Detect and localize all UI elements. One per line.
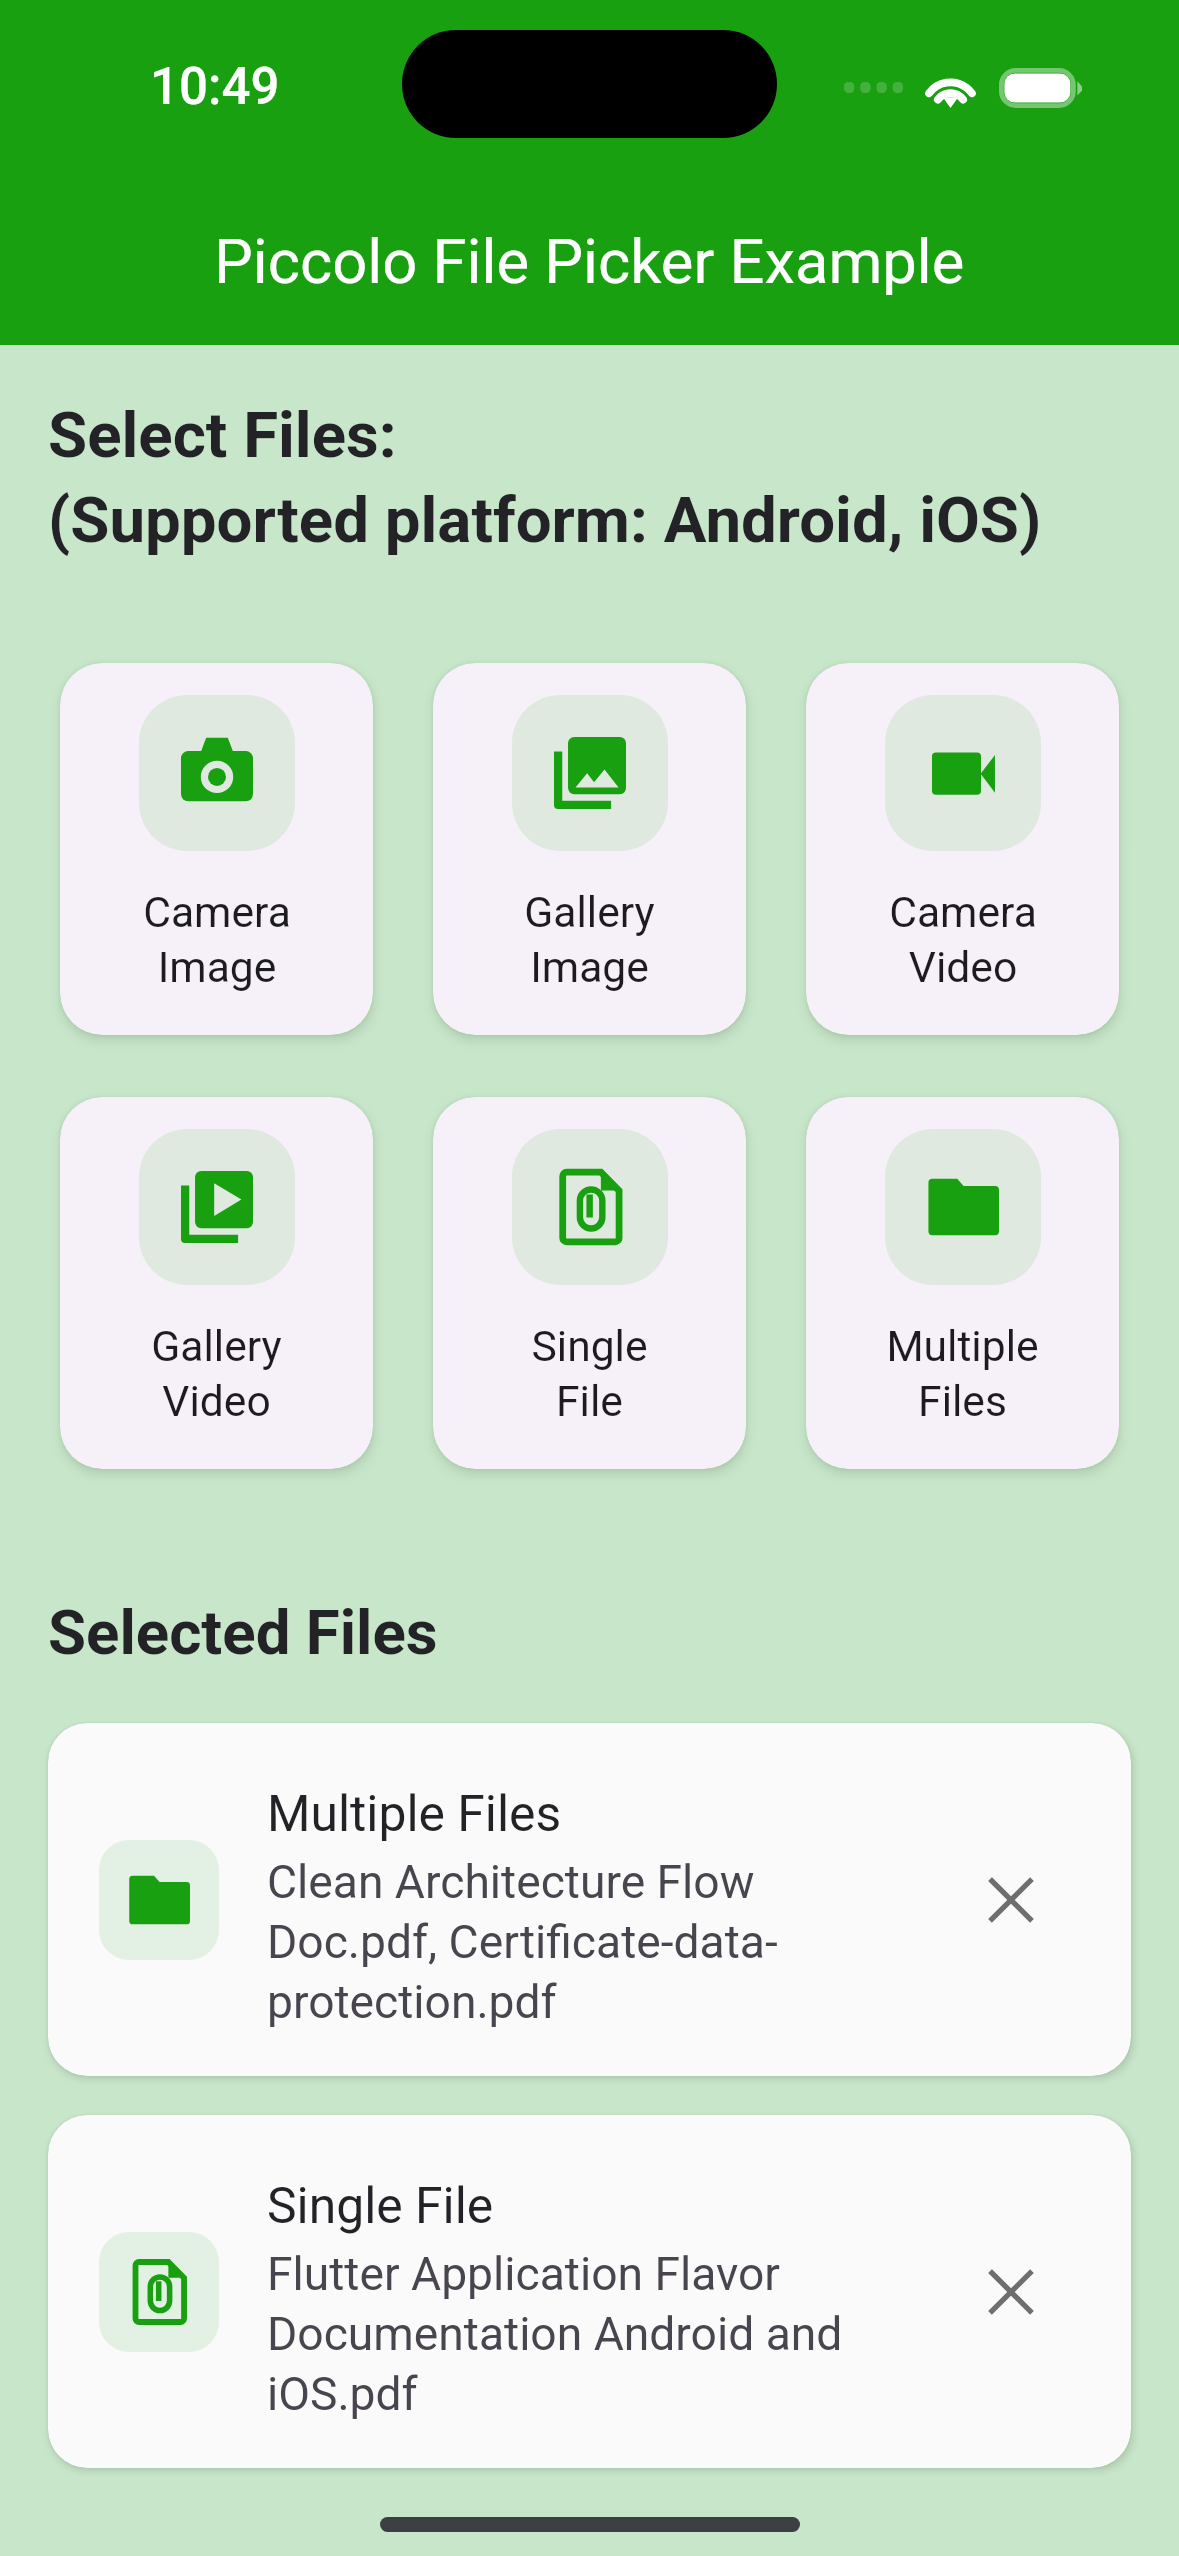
staticText: Single File — [531, 1321, 648, 1426]
button[interactable]: Gallery Image — [433, 663, 746, 1035]
staticText: Multiple Files — [886, 1321, 1039, 1426]
staticText: Camera Video — [889, 887, 1037, 992]
staticText: Camera Image — [143, 887, 291, 992]
button[interactable]: Remove file — [954, 2235, 1068, 2349]
staticText: Gallery Video — [151, 1321, 282, 1426]
button[interactable]: Single File — [48, 2115, 1131, 2468]
button[interactable]: Multiple Files — [806, 1097, 1119, 1469]
button[interactable]: Remove file — [954, 1843, 1068, 1957]
staticText: Select Files: (Supported platform: Andro… — [48, 398, 1042, 558]
staticText: Flutter Application Flavor Documentation… — [267, 2247, 855, 2421]
button[interactable]: Single File — [433, 1097, 746, 1469]
staticText: Clean Architecture Flow Doc.pdf, Certifi… — [267, 1855, 855, 2029]
staticText: Single File — [267, 2177, 494, 2235]
button[interactable]: Multiple Files — [48, 1723, 1131, 2076]
staticText: Gallery Image — [524, 887, 655, 992]
staticText: Selected Files — [48, 1597, 438, 1669]
staticText: Multiple Files — [267, 1785, 562, 1843]
staticText: Piccolo File Picker Example — [214, 226, 965, 298]
button[interactable]: Camera Video — [806, 663, 1119, 1035]
button[interactable]: Camera Image — [60, 663, 373, 1035]
button[interactable]: Gallery Video — [60, 1097, 373, 1469]
staticText: 10:49 — [150, 57, 280, 117]
